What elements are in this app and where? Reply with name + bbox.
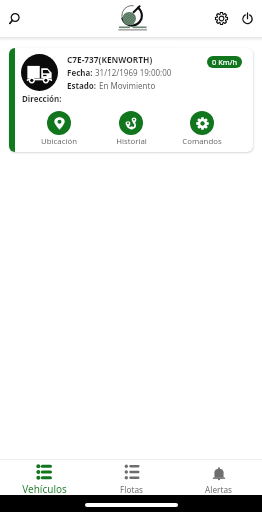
button[interactable]: Vehículos	[0, 460, 88, 495]
staticText: Flotas	[120, 484, 143, 495]
button[interactable]: Historial	[105, 111, 157, 147]
staticText: Estado:	[67, 80, 99, 91]
staticText: 31/12/1969 19:00:00	[95, 67, 172, 78]
staticText: Ubicación	[41, 136, 77, 147]
button[interactable]: Comandos	[176, 111, 228, 147]
button[interactable]: Search	[4, 8, 24, 28]
button[interactable]: Ubicación	[33, 111, 85, 147]
staticText: 0 Km/h	[212, 57, 237, 67]
button[interactable]: Settings	[211, 8, 232, 29]
staticText: Vehículos	[22, 482, 67, 495]
button[interactable]: Flotas	[88, 460, 175, 495]
button[interactable]: Alertas	[175, 460, 262, 495]
staticText: Fecha:	[67, 67, 95, 78]
staticText: Alertas	[205, 484, 232, 495]
staticText: En Movimiento	[99, 80, 156, 91]
button[interactable]: Log out	[237, 8, 258, 29]
staticText: C7E-737(KENWORTH)	[67, 54, 153, 65]
staticText: Dirección:	[22, 93, 62, 104]
button[interactable]: C7E-737(KENWORTH)	[9, 48, 253, 152]
staticText: Historial	[116, 136, 147, 147]
staticText: Comandos	[182, 136, 222, 147]
